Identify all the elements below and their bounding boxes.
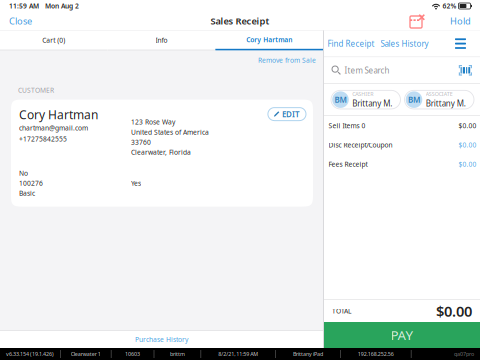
staticText: Remove from Sale: [258, 56, 316, 65]
staticText: Fees Receipt: [328, 160, 367, 169]
staticText: EDIT: [282, 109, 300, 119]
staticText: v6.33.154 (19.1.426): [6, 350, 54, 358]
staticText: Basic: [19, 189, 35, 198]
button[interactable]: BM: [331, 90, 400, 109]
staticText: $0.00: [459, 140, 477, 149]
staticText: Disc Receipt/Coupon: [328, 140, 392, 149]
staticText: Close: [9, 15, 32, 27]
staticText: Sell Items 0: [328, 121, 365, 130]
staticText: 123 Rose Way: [131, 118, 175, 126]
staticText: Clearwater, Florida: [131, 148, 191, 157]
staticText: Info: [155, 36, 167, 45]
staticText: Clearwater 1: [71, 350, 101, 358]
staticText: Cory Hartman: [19, 107, 98, 122]
staticText: No: [19, 169, 28, 177]
button[interactable]: Info: [108, 31, 215, 51]
staticText: Yes: [131, 179, 141, 188]
button[interactable]: Sell Items 0: [324, 116, 480, 135]
staticText: Mon Aug 2: [39, 2, 79, 10]
button[interactable]: PAY: [324, 322, 480, 348]
staticText: TOTAL: [332, 307, 351, 315]
button[interactable]: Remove from Sale: [255, 54, 319, 67]
staticText: Brittany M.: [426, 98, 466, 109]
button[interactable]: Close: [6, 12, 35, 30]
button[interactable]: Sales History: [378, 35, 432, 52]
staticText: Cart (0): [42, 36, 65, 45]
staticText: PAY: [390, 326, 413, 344]
staticText: CASHIER: [352, 90, 373, 98]
staticText: Find Receipt: [328, 38, 375, 49]
staticText: 11:59 AM: [9, 2, 39, 10]
staticText: Hold: [450, 15, 471, 27]
button[interactable]: Menu: [451, 39, 470, 49]
staticText: Sales Receipt: [210, 15, 269, 27]
button[interactable]: Fees Receipt: [324, 155, 480, 174]
staticText: brittm: [170, 350, 185, 358]
staticText: Brittany iPad: [293, 350, 323, 358]
staticText: 10603: [125, 350, 140, 358]
staticText: BM: [334, 94, 346, 105]
staticText: 33760: [131, 138, 151, 147]
button[interactable]: Purchase History: [0, 331, 323, 348]
button[interactable]: Find Receipt: [325, 35, 378, 52]
staticText: Brittany M.: [352, 98, 392, 109]
staticText: Purchase History: [135, 335, 188, 344]
button[interactable]: Item Search: [324, 57, 480, 83]
staticText: United States of America: [131, 128, 209, 137]
staticText: Sales History: [381, 38, 429, 49]
button[interactable]: BM: [404, 90, 474, 109]
staticText: $0.00: [436, 301, 472, 321]
staticText: $0.00: [459, 121, 477, 130]
staticText: +17275842555: [19, 134, 67, 143]
staticText: 62%: [440, 2, 458, 10]
button[interactable]: Cart (0): [0, 31, 108, 51]
staticText: ASSOCIATE: [426, 90, 453, 98]
staticText: Cory Hartman: [246, 35, 292, 44]
staticText: Item Search: [345, 65, 390, 76]
button[interactable]: EDIT: [268, 108, 306, 121]
button[interactable]: Cory Hartman: [215, 31, 323, 51]
button[interactable]: Void receipt: [407, 14, 428, 28]
staticText: BM: [408, 94, 420, 105]
staticText: $0.00: [459, 160, 477, 169]
staticText: chartman@gmail.com: [19, 123, 88, 132]
button[interactable]: Hold: [447, 12, 474, 30]
staticText: 8/2/21, 11:59 AM: [218, 350, 258, 358]
button[interactable]: Disc Receipt/Coupon: [324, 135, 480, 155]
staticText: CUSTOMER: [18, 86, 54, 95]
staticText: qa07pro: [454, 350, 474, 358]
staticText: 192.168.252.56: [358, 350, 394, 358]
staticText: 100276: [19, 179, 43, 188]
